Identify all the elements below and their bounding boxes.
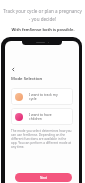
staticText: With femSense both is possible. <box>11 27 75 32</box>
button[interactable]: I want to have children <box>11 108 73 125</box>
staticText: I want to have children <box>29 112 52 121</box>
staticText: The mode you select determines how you c… <box>11 129 73 149</box>
staticText: Next <box>40 176 47 180</box>
button[interactable]: Next <box>15 173 72 182</box>
staticText: Mode Selection <box>11 76 43 82</box>
staticText: I want to track my cycle <box>29 92 58 101</box>
button[interactable]: Back <box>9 65 18 74</box>
button[interactable]: I want to track my cycle <box>11 88 73 105</box>
staticText: Track your cycle or plan a pregnancy - y… <box>2 8 83 23</box>
